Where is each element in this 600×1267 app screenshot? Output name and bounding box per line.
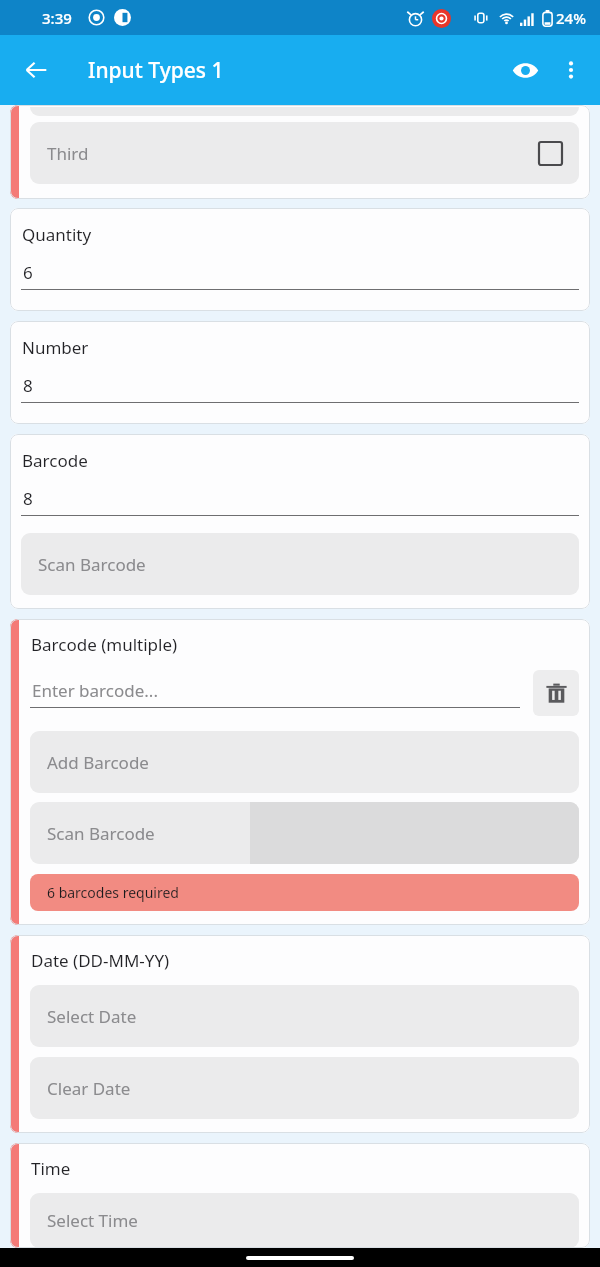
staticText: Quantity: [22, 223, 92, 246]
staticText: 8: [23, 374, 33, 397]
staticText: Third: [47, 142, 89, 165]
staticText: 8: [23, 487, 33, 510]
button[interactable]: Preview: [502, 47, 548, 93]
staticText: Date (DD-MM-YY): [31, 949, 170, 972]
button[interactable]: Back: [14, 48, 58, 92]
button[interactable]: Delete barcode: [533, 670, 579, 716]
staticText: Input Types 1: [88, 56, 224, 85]
staticText: Select Date: [47, 1005, 137, 1028]
staticText: Scan Barcode: [38, 553, 146, 576]
button[interactable]: 6: [21, 261, 579, 290]
staticText: Add Barcode: [47, 751, 149, 774]
staticText: Barcode (multiple): [31, 633, 178, 656]
button[interactable]: Add Barcode: [30, 731, 579, 793]
button[interactable]: More options: [548, 47, 594, 93]
staticText: Number: [22, 336, 89, 359]
staticText: Select Time: [47, 1209, 138, 1232]
staticText: Scan Barcode: [47, 822, 155, 845]
staticText: Clear Date: [47, 1077, 131, 1100]
button[interactable]: Third: [30, 122, 579, 184]
staticText: 3:39: [42, 8, 72, 28]
button[interactable]: 8: [21, 374, 579, 403]
staticText: Enter barcode...: [32, 679, 158, 702]
staticText: 6 barcodes required: [47, 883, 179, 902]
button[interactable]: Select Time: [30, 1193, 579, 1248]
staticText: Barcode: [22, 449, 88, 472]
button[interactable]: Enter barcode...: [30, 679, 520, 708]
button[interactable]: Scan Barcode: [30, 802, 579, 864]
button[interactable]: Clear Date: [30, 1057, 579, 1119]
button[interactable]: Scan Barcode: [21, 533, 579, 595]
button[interactable]: 8: [21, 487, 579, 516]
staticText: 24%: [556, 8, 586, 28]
staticText: 6: [23, 261, 33, 284]
staticText: Time: [31, 1157, 71, 1180]
button[interactable]: Select Date: [30, 985, 579, 1047]
